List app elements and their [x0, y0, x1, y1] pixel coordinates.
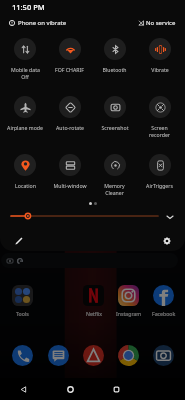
button[interactable]: Camera: [146, 345, 181, 366]
staticText: Off: [21, 73, 29, 80]
button[interactable]: Brightness: [11, 208, 158, 224]
staticText: Multi-window: [53, 182, 87, 189]
staticText: Location: [15, 182, 36, 189]
staticText: Bluetooth: [102, 66, 127, 73]
button[interactable]: Messages: [40, 345, 76, 366]
button[interactable]: Screenshot: [92, 96, 137, 131]
button[interactable]: Bluetooth: [92, 38, 137, 73]
button[interactable]: Assistant: [76, 345, 111, 366]
button[interactable]: Phone: [4, 345, 40, 366]
staticText: Phone on vibrate: [18, 19, 67, 27]
staticText: Mobile data: [11, 66, 40, 73]
button[interactable]: Settings: [160, 234, 174, 248]
button[interactable]: Mobile data: [3, 38, 47, 80]
button[interactable]: Vibrate: [137, 38, 182, 73]
button[interactable]: Location: [3, 154, 47, 189]
button[interactable]: Back: [0, 378, 47, 400]
button[interactable]: [1, 253, 178, 268]
button[interactable]: Netflix: [76, 285, 111, 317]
button[interactable]: Memory: [92, 154, 137, 196]
staticText: FOF CHARIF: [55, 66, 84, 73]
button[interactable]: Chrome: [111, 345, 146, 366]
button[interactable]: Facebook: [146, 285, 181, 317]
button[interactable]: Instagram: [111, 285, 146, 317]
staticText: Netflix: [86, 310, 102, 317]
staticText: Screenshot: [101, 124, 129, 131]
button[interactable]: Screen: [137, 96, 182, 138]
button[interactable]: Multi-window: [47, 154, 92, 189]
staticText: Auto-rotate: [56, 124, 84, 131]
staticText: Facebook: [152, 310, 176, 317]
staticText: AirTriggers: [146, 182, 173, 189]
staticText: Screen: [151, 124, 168, 131]
staticText: Vibrate: [151, 66, 169, 73]
staticText: 11:50 PM: [12, 2, 45, 12]
staticText: No service: [146, 19, 176, 27]
button[interactable]: Home: [47, 378, 93, 400]
staticText: Airplane mode: [7, 124, 43, 131]
button[interactable]: Recents: [93, 378, 139, 400]
button[interactable]: Tools: [4, 285, 40, 317]
staticText: recorder: [149, 131, 170, 138]
button[interactable]: Expand: [164, 211, 175, 222]
button[interactable]: Auto-rotate: [47, 96, 92, 131]
staticText: Memory: [104, 182, 125, 189]
button[interactable]: Edit: [12, 234, 26, 248]
button[interactable]: Airplane mode: [3, 96, 47, 131]
button[interactable]: AirTriggers: [137, 154, 182, 189]
staticText: Instagram: [116, 310, 142, 317]
staticText: Tools: [16, 310, 29, 317]
staticText: Cleaner: [105, 189, 124, 196]
button[interactable]: FOF CHARIF: [47, 38, 92, 73]
